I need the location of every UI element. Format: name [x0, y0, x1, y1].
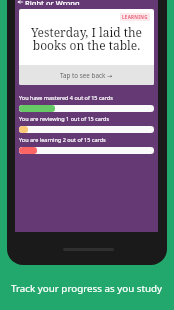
- staticText: Yesterday, I laid the books on the table…: [19, 24, 154, 53]
- staticText: You are learning 2 out of 15 cards: [19, 136, 106, 143]
- staticText: LEARNING: [122, 14, 148, 20]
- other: Back: [18, 0, 23, 4]
- staticText: Tap to see back →: [60, 71, 113, 80]
- button[interactable]: LEARNING: [19, 9, 154, 85]
- staticText: You are reviewing 1 out of 15 cards: [19, 115, 110, 122]
- staticText: You have mastered 4 out of 15 cards: [19, 94, 113, 101]
- button[interactable]: Tap to see back →: [19, 65, 154, 85]
- staticText: Track your progress as you study: [11, 282, 163, 295]
- button[interactable]: Back: [15, 0, 158, 7]
- staticText: Right or Wrong: [25, 0, 80, 5]
